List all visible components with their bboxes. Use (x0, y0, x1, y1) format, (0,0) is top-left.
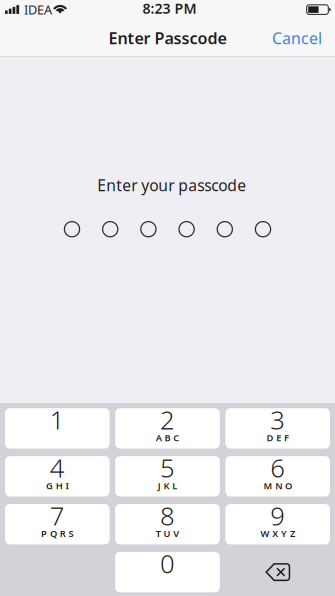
button[interactable]: 2 (115, 408, 220, 449)
button[interactable]: 3 (225, 408, 330, 449)
staticText: W (260, 527, 269, 540)
button[interactable]: 7 (5, 504, 110, 544)
staticText: Enter your passcode (97, 175, 246, 195)
button[interactable]: 5 (115, 456, 220, 496)
staticText: Z (290, 527, 295, 540)
staticText: 8:23 PM (142, 0, 196, 18)
staticText: T (156, 527, 161, 540)
staticText: U (163, 527, 170, 540)
staticText: 7 (50, 498, 65, 532)
staticText: 1 (50, 403, 65, 437)
staticText: E (276, 431, 281, 444)
staticText: Y (281, 527, 287, 540)
staticText: N (275, 479, 282, 492)
staticText: P (41, 527, 47, 540)
staticText: Cancel (272, 27, 322, 49)
button[interactable]: 0 (115, 552, 220, 592)
staticText: IDEA (24, 1, 52, 18)
staticText: 9 (270, 498, 285, 532)
staticText: 6 (270, 451, 285, 485)
button[interactable]: 8 (115, 504, 220, 544)
button[interactable]: 1 (5, 408, 110, 449)
staticText: 5 (160, 451, 175, 485)
staticText: L (172, 479, 177, 492)
button[interactable]: 6 (225, 456, 330, 496)
staticText: D (266, 431, 273, 444)
button[interactable]: Cancel (259, 18, 335, 58)
staticText: 4 (50, 451, 65, 485)
staticText: O (285, 479, 292, 492)
staticText: M (263, 479, 272, 492)
staticText: F (284, 431, 289, 444)
button[interactable]: Delete (225, 552, 330, 592)
staticText: 3 (270, 403, 285, 437)
staticText: J (158, 479, 161, 492)
staticText: V (173, 527, 179, 540)
staticText: 0 (160, 546, 175, 580)
staticText: B (164, 431, 170, 444)
button[interactable]: 4 (5, 456, 110, 496)
staticText: S (68, 527, 73, 540)
staticText: X (272, 527, 278, 540)
staticText: Enter Passcode (108, 27, 226, 49)
staticText: C (173, 431, 179, 444)
staticText: R (60, 527, 66, 540)
staticText: 8 (160, 498, 175, 532)
staticText: 2 (160, 403, 175, 437)
staticText: H (56, 479, 63, 492)
staticText: A (156, 431, 162, 444)
staticText: K (163, 479, 169, 492)
staticText: Q (50, 527, 57, 540)
button[interactable]: 9 (225, 504, 330, 544)
staticText: I (66, 479, 69, 492)
staticText: G (46, 479, 53, 492)
